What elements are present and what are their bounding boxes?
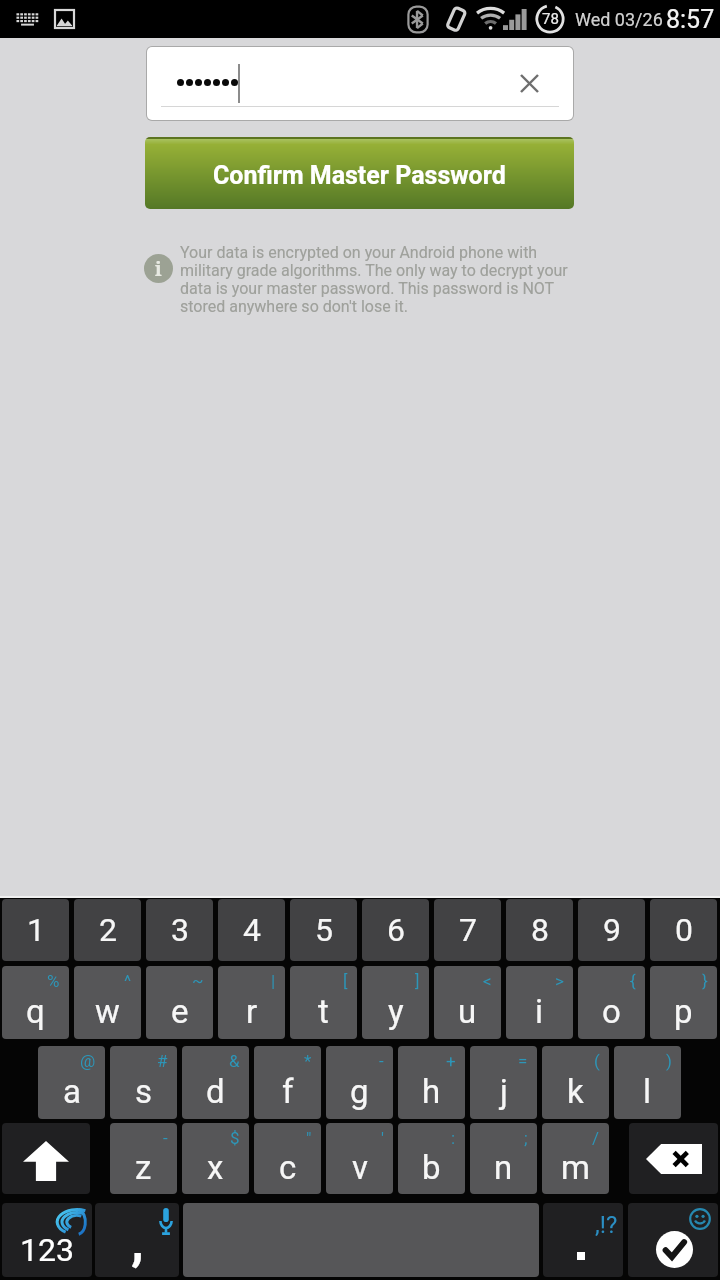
staticText: =: [518, 1051, 528, 1071]
button[interactable]: Clear text: [505, 61, 553, 105]
staticText: 9: [603, 911, 621, 949]
staticText: x: [207, 1148, 224, 1187]
staticText: 3: [171, 911, 189, 949]
button[interactable]: l: [614, 1046, 681, 1119]
staticText: <: [483, 971, 492, 991]
staticText: 5: [315, 911, 333, 949]
button[interactable]: i: [506, 966, 573, 1039]
staticText: ': [381, 1128, 384, 1148]
button[interactable]: x: [182, 1123, 249, 1194]
button[interactable]: Screenshot notification: [54, 9, 75, 29]
staticText: }: [702, 971, 708, 991]
staticText: j: [500, 1072, 508, 1111]
staticText: i: [535, 992, 544, 1031]
button[interactable]: d: [182, 1046, 249, 1119]
staticText: 1: [27, 911, 45, 949]
staticText: l: [643, 1072, 652, 1111]
staticText: 123: [20, 1231, 74, 1269]
button[interactable]: j: [470, 1046, 537, 1119]
button[interactable]: ,!?: [543, 1203, 623, 1277]
button[interactable]: 6: [362, 899, 429, 961]
button[interactable]: w: [74, 966, 141, 1039]
staticText: [: [343, 971, 348, 991]
staticText: o: [602, 992, 621, 1031]
staticText: r: [246, 992, 258, 1031]
staticText: ): [666, 1051, 672, 1071]
button[interactable]: 7: [434, 899, 501, 961]
button[interactable]: 8: [506, 899, 573, 961]
staticText: ;: [524, 1128, 528, 1148]
button[interactable]: 4: [218, 899, 285, 961]
staticText: 6: [387, 911, 405, 949]
staticText: u: [458, 992, 477, 1031]
button[interactable]: 9: [578, 899, 645, 961]
staticText: m: [561, 1148, 590, 1187]
button[interactable]: 5: [290, 899, 357, 961]
button[interactable]: g: [326, 1046, 393, 1119]
button[interactable]: Enter: [628, 1203, 718, 1277]
button[interactable]: Keyboard notification: [16, 13, 39, 26]
staticText: 78: [542, 10, 559, 28]
staticText: w: [95, 992, 120, 1031]
staticText: v: [352, 1148, 368, 1187]
staticText: Confirm Master Password: [213, 161, 506, 190]
staticText: #: [157, 1051, 168, 1071]
button[interactable]: q: [2, 966, 69, 1039]
button[interactable]: s: [110, 1046, 177, 1119]
button[interactable]: u: [434, 966, 501, 1039]
button[interactable]: r: [218, 966, 285, 1039]
staticText: k: [567, 1072, 584, 1111]
staticText: f: [282, 1072, 294, 1111]
staticText: 2: [99, 911, 117, 949]
button[interactable]: k: [542, 1046, 609, 1119]
button[interactable]: Clear text: [147, 47, 573, 120]
button[interactable]: Confirm Master Password: [145, 137, 574, 209]
staticText: (: [594, 1051, 600, 1071]
staticText: @: [80, 1051, 96, 1071]
button[interactable]: 0: [650, 899, 717, 961]
staticText: $: [230, 1128, 240, 1148]
staticText: |: [271, 971, 276, 991]
button[interactable]: v: [326, 1123, 393, 1194]
button[interactable]: h: [398, 1046, 465, 1119]
button[interactable]: y: [362, 966, 429, 1039]
button[interactable]: Shift: [2, 1123, 90, 1194]
button[interactable]: n: [470, 1123, 537, 1194]
button[interactable]: b: [398, 1123, 465, 1194]
button[interactable]: ,: [95, 1203, 179, 1277]
button[interactable]: p: [650, 966, 717, 1039]
staticText: h: [422, 1072, 441, 1111]
button[interactable]: t: [290, 966, 357, 1039]
staticText: z: [135, 1148, 152, 1187]
button[interactable]: z: [110, 1123, 177, 1194]
staticText: e: [171, 992, 189, 1031]
button[interactable]: 3: [146, 899, 213, 961]
staticText: 4: [243, 911, 261, 949]
staticText: ]: [415, 971, 420, 991]
button[interactable]: 2: [74, 899, 141, 961]
button[interactable]: m: [542, 1123, 609, 1194]
button[interactable]: Backspace: [629, 1123, 718, 1194]
staticText: %: [47, 971, 60, 991]
staticText: 0: [675, 911, 693, 949]
button[interactable]: o: [578, 966, 645, 1039]
staticText: *: [304, 1051, 312, 1071]
staticText: :: [451, 1128, 456, 1148]
staticText: c: [279, 1148, 297, 1187]
button[interactable]: a: [38, 1046, 105, 1119]
staticText: ~: [192, 971, 204, 991]
button[interactable]: 123: [2, 1203, 92, 1277]
staticText: ^: [124, 971, 132, 991]
staticText: >: [555, 971, 564, 991]
staticText: y: [388, 992, 404, 1031]
staticText: ": [306, 1128, 312, 1148]
button[interactable]: e: [146, 966, 213, 1039]
staticText: ,!?: [595, 1211, 618, 1239]
button[interactable]: 1: [2, 899, 69, 961]
staticText: i: [155, 256, 162, 282]
button[interactable]: f: [254, 1046, 321, 1119]
staticText: 8:57: [666, 5, 715, 34]
button[interactable]: c: [254, 1123, 321, 1194]
staticText: b: [422, 1148, 441, 1187]
